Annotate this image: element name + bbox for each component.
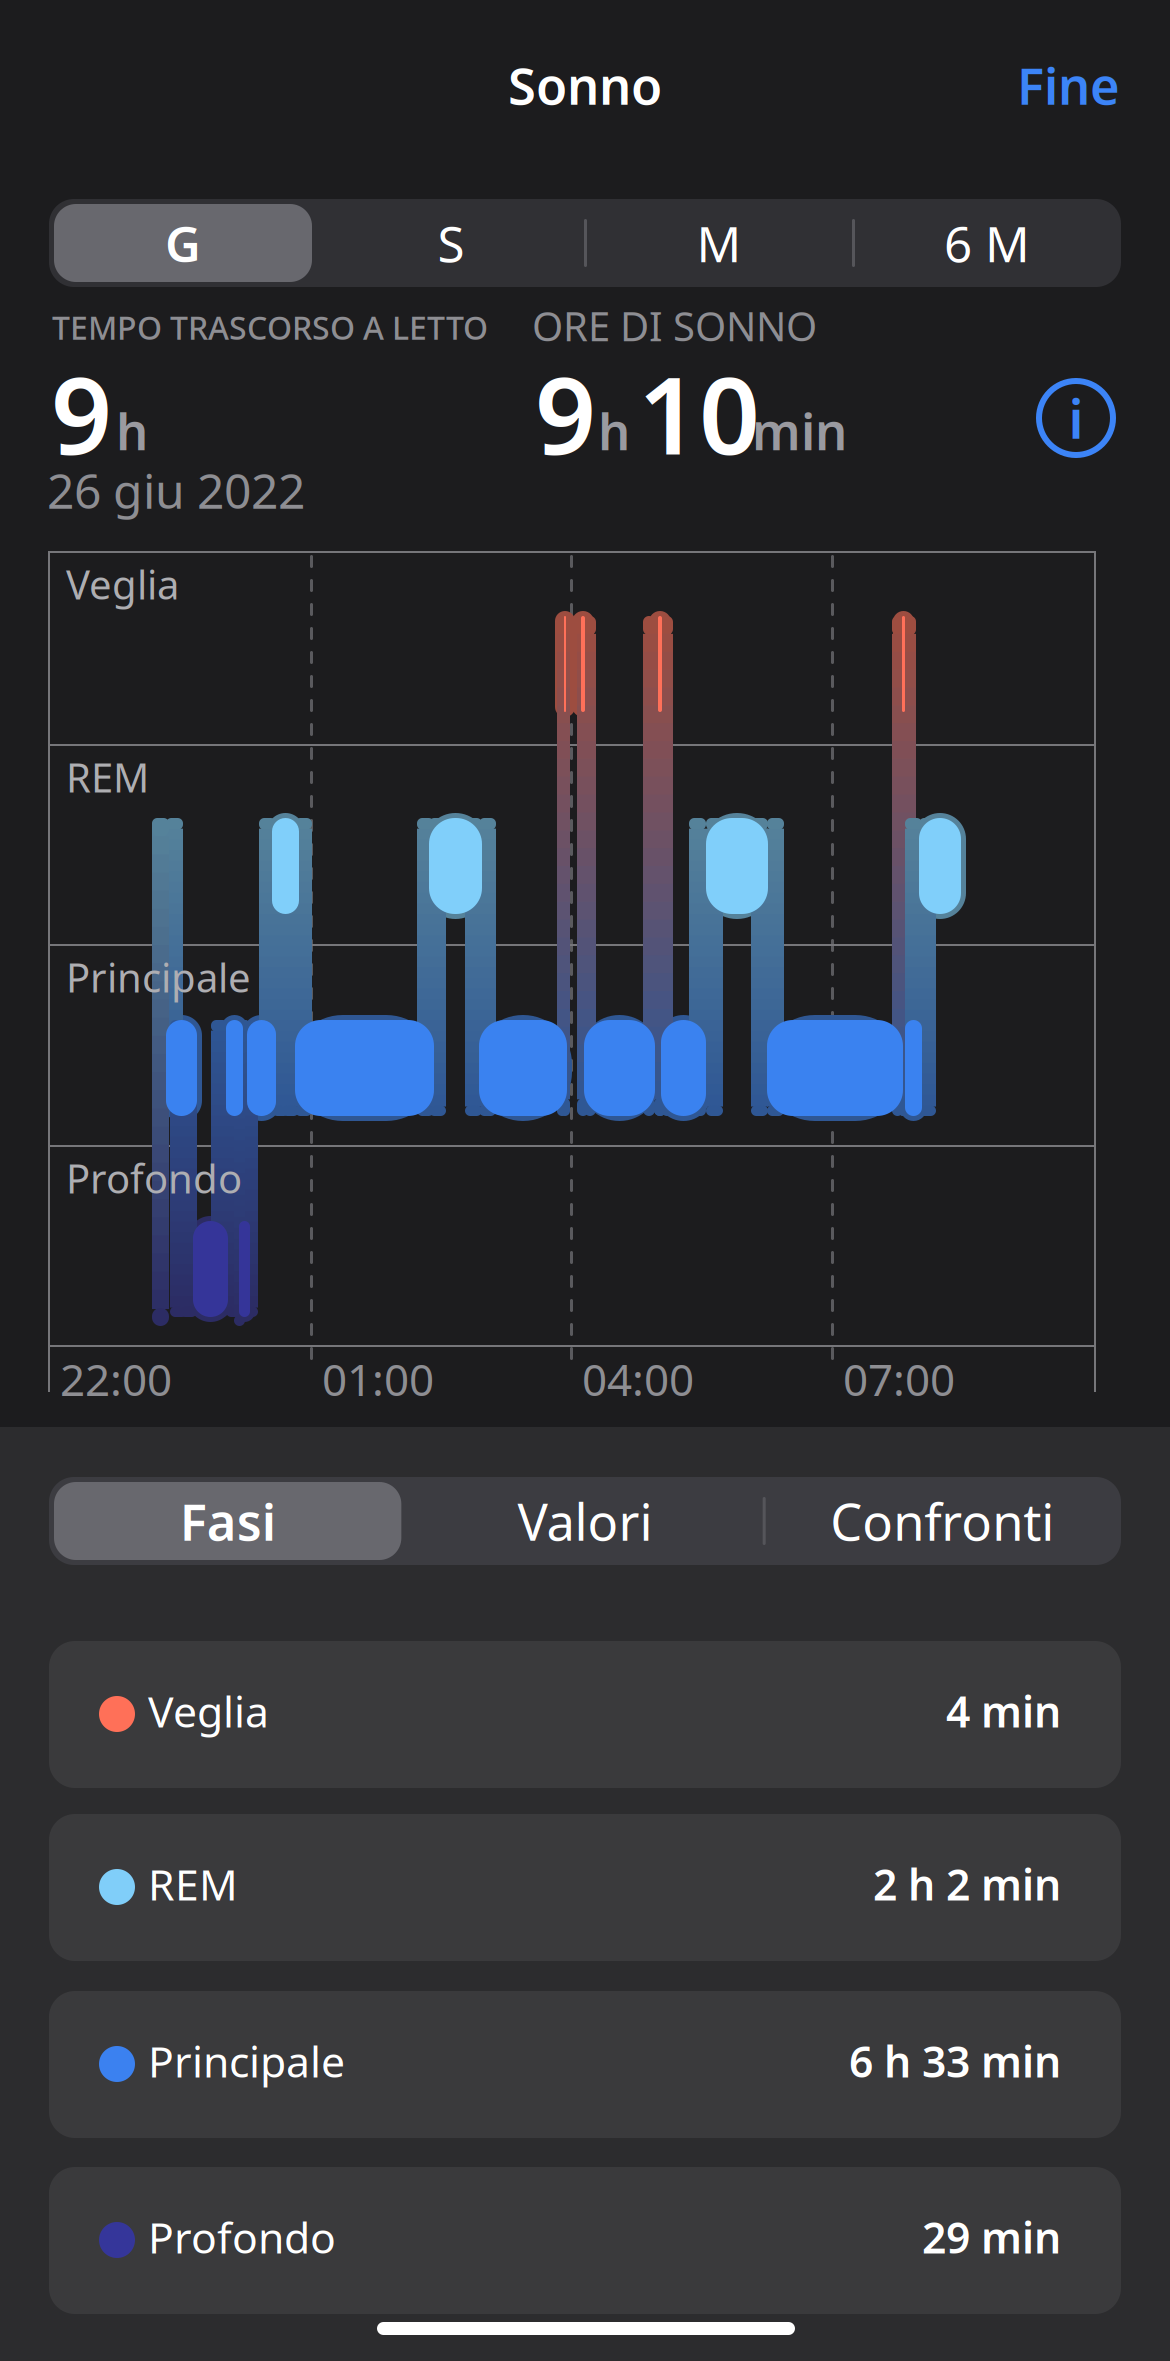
staticText: Principale xyxy=(148,2033,345,2089)
staticText: i xyxy=(1068,383,1083,453)
staticText: Sonno xyxy=(508,51,662,119)
staticText: 22:00 xyxy=(60,1350,172,1408)
staticText: min xyxy=(752,397,847,464)
staticText: 9 xyxy=(535,342,596,484)
button[interactable]: Veglia xyxy=(0,1641,1170,1788)
staticText: 04:00 xyxy=(582,1350,694,1408)
staticText: 9 xyxy=(51,342,112,484)
button[interactable]: Fine xyxy=(900,55,1120,115)
staticText: Fasi xyxy=(180,1487,276,1555)
staticText: h xyxy=(598,397,630,464)
staticText: 2 h 2 min xyxy=(873,1856,1061,1912)
staticText: h xyxy=(116,397,148,464)
staticText: Profondo xyxy=(66,1151,242,1204)
staticText: ORE DI SONNO xyxy=(532,299,817,352)
staticText: S xyxy=(437,210,464,276)
staticText: Fine xyxy=(1017,51,1120,119)
staticText: REM xyxy=(148,1856,238,1912)
staticText: 26 giu 2022 xyxy=(47,458,305,522)
staticText: Veglia xyxy=(66,557,179,610)
button[interactable]: REM xyxy=(0,1814,1170,1961)
staticText: Veglia xyxy=(148,1683,269,1739)
staticText: Confronti xyxy=(830,1487,1054,1555)
staticText: G xyxy=(165,210,201,276)
staticText: 4 min xyxy=(946,1683,1061,1739)
staticText: 6 M xyxy=(944,210,1030,276)
button[interactable]: Confronti xyxy=(764,1477,1121,1565)
button[interactable]: Informazioni xyxy=(1028,370,1124,466)
button[interactable]: Profondo xyxy=(0,2167,1170,2314)
button[interactable]: 6 M xyxy=(853,199,1121,287)
button[interactable]: Fasi xyxy=(49,1477,406,1565)
staticText: TEMPO TRASCORSO A LETTO xyxy=(52,306,488,349)
button[interactable]: Valori xyxy=(406,1477,764,1565)
button[interactable]: S xyxy=(317,199,585,287)
staticText: Valori xyxy=(517,1487,652,1555)
staticText: Profondo xyxy=(148,2209,336,2265)
staticText: Principale xyxy=(66,950,251,1003)
staticText: 10 xyxy=(638,342,760,484)
staticText: 6 h 33 min xyxy=(849,2033,1061,2089)
staticText: 01:00 xyxy=(322,1350,434,1408)
staticText: 07:00 xyxy=(843,1350,955,1408)
button[interactable]: Principale xyxy=(0,1991,1170,2138)
button[interactable]: M xyxy=(585,199,853,287)
staticText: REM xyxy=(66,750,149,803)
staticText: 29 min xyxy=(922,2209,1061,2265)
staticText: M xyxy=(696,210,741,276)
button[interactable]: G xyxy=(49,199,317,287)
